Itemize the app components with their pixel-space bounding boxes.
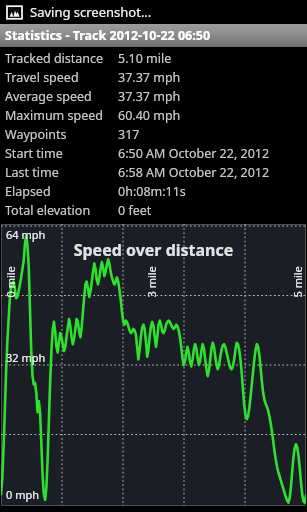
staticText: 6:50 AM October 22, 2012 [118,145,270,162]
button[interactable]: Maximum speed [0,106,307,125]
button[interactable]: Average speed [0,87,307,106]
button[interactable]: Speed over distance chart [1,224,306,506]
staticText: Travel speed [5,69,118,86]
staticText: Maximum speed [5,107,118,124]
button[interactable]: Tracked distance [0,49,307,68]
staticText: 0 mph [6,487,39,502]
staticText: Start time [5,145,118,162]
staticText: Waypoints [5,126,118,143]
staticText: 0 mile [2,265,17,297]
staticText: Elapsed [5,183,118,200]
button[interactable]: Screenshot saved [0,0,307,24]
staticText: 3 mile [143,265,158,297]
button[interactable]: Start time [0,144,307,163]
staticText: Last time [5,164,118,181]
button[interactable]: Travel speed [0,68,307,87]
staticText: Average speed [5,88,118,105]
staticText: Saving screenshot... [30,3,152,21]
button[interactable]: Total elevation [0,201,307,220]
staticText: 6:58 AM October 22, 2012 [118,164,270,181]
staticText: Speed over distance [1,239,306,261]
other: Screenshot saved [7,5,22,20]
button[interactable]: Statistics - Track 2012-10-22 06:50 [0,24,307,47]
staticText: 32 mph [6,350,46,365]
staticText: 317 [118,126,140,143]
button[interactable]: Last time [0,163,307,182]
staticText: 37.37 mph [118,88,181,105]
staticText: 64 mph [6,227,46,242]
staticText: Statistics - Track 2012-10-22 06:50 [5,27,211,44]
staticText: 0h:08m:11s [118,183,186,200]
staticText: Tracked distance [5,50,118,67]
button[interactable]: Waypoints [0,125,307,144]
staticText: 5.10 mile [118,50,172,67]
button[interactable]: Elapsed [0,182,307,201]
staticText: 0 feet [118,202,152,219]
staticText: 37.37 mph [118,69,181,86]
staticText: 5 mile [289,265,304,297]
staticText: 60.40 mph [118,107,181,124]
staticText: Total elevation [5,202,118,219]
